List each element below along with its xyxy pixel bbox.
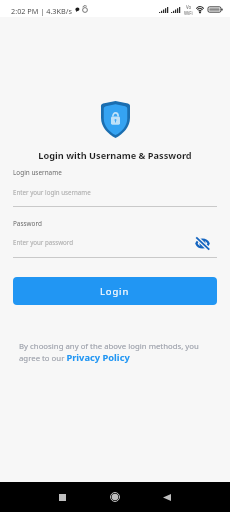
button[interactable]: By choosing any of the above login metho… bbox=[19, 341, 201, 364]
staticText: Login with Username & Password bbox=[0, 149, 230, 162]
staticText: Login username bbox=[13, 168, 62, 177]
staticText: Login bbox=[100, 285, 130, 298]
button[interactable]: Show password bbox=[193, 234, 211, 252]
button[interactable]: Home bbox=[99, 482, 131, 512]
button[interactable]: Back bbox=[151, 482, 183, 512]
staticText: Vo bbox=[186, 4, 192, 10]
staticText: Enter your login username bbox=[13, 188, 91, 196]
staticText: 2:02 PM | 4.3KB/s bbox=[11, 6, 72, 16]
staticText: WiFi bbox=[184, 10, 193, 16]
button[interactable]: Recents bbox=[46, 482, 78, 512]
staticText: Password bbox=[13, 219, 42, 228]
staticText: Enter your password bbox=[13, 238, 74, 246]
button[interactable]: Login bbox=[13, 277, 217, 305]
